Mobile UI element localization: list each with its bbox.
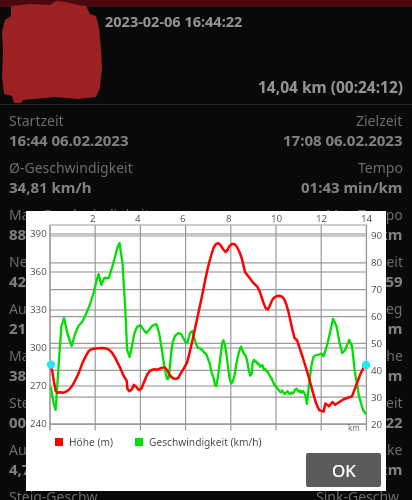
- staticText: Zielzeit: [356, 111, 403, 130]
- staticText: Aufstieg: [9, 299, 64, 318]
- staticText: 4,7 km: [9, 459, 59, 479]
- staticText: 60: [371, 310, 383, 323]
- staticText: Startzeit: [9, 111, 64, 130]
- staticText: 219 m: [9, 318, 54, 338]
- staticText: 4: [135, 212, 141, 225]
- staticText: 01:43 min/km: [301, 177, 403, 197]
- staticText: 50: [371, 337, 383, 350]
- staticText: Aufstiegsstrecke: [9, 440, 118, 459]
- staticText: Ø-Geschwindigkeit: [9, 158, 133, 177]
- staticText: 90: [371, 229, 383, 242]
- staticText: 20: [371, 418, 383, 431]
- staticText: 10: [271, 212, 283, 225]
- staticText: 330: [30, 303, 47, 316]
- staticText: Tempo: [358, 158, 403, 177]
- staticText: 14: [361, 212, 373, 225]
- staticText: 21:59: [364, 271, 403, 291]
- staticText: 240: [30, 417, 47, 430]
- staticText: 88,99 km/h: [9, 224, 92, 244]
- staticText: 40: [371, 364, 383, 377]
- staticText: OK: [332, 459, 356, 482]
- button[interactable]: OK: [306, 453, 381, 487]
- staticText: 2023-02-06 16:44:22: [105, 11, 243, 31]
- staticText: 17:08 06.02.2023: [283, 130, 403, 150]
- staticText: 00:12: [9, 412, 48, 432]
- other: Map thumbnail: [0, 0, 412, 104]
- staticText: 300: [30, 341, 47, 354]
- staticText: Max-Höhe: [9, 346, 77, 365]
- staticText: 6: [180, 212, 186, 225]
- staticText: 387 m: [9, 365, 54, 385]
- staticText: 360: [30, 265, 47, 278]
- staticText: Geschwindigkeit (km/h): [149, 435, 262, 449]
- staticText: 2: [90, 212, 96, 225]
- staticText: 70: [371, 283, 383, 296]
- staticText: 42:59: [9, 271, 48, 291]
- staticText: Höhe (m): [69, 435, 114, 449]
- staticText: Sinkzeit: [352, 393, 403, 412]
- staticText: 8: [226, 212, 232, 225]
- staticText: Steigzeit: [9, 393, 65, 412]
- staticText: 248 m: [358, 365, 403, 385]
- staticText: 30: [371, 391, 383, 404]
- staticText: 16:44 06.02.2023: [9, 130, 129, 150]
- staticText: 12: [316, 212, 328, 225]
- staticText: 390: [30, 227, 47, 240]
- staticText: Max-Geschwindigkeit: [9, 205, 150, 224]
- staticText: 00:22: [364, 412, 403, 432]
- staticText: Sink-Geschw.: [316, 487, 403, 500]
- staticText: km: [348, 422, 360, 433]
- staticText: 80: [371, 256, 383, 269]
- staticText: Abstiegsstrecke: [299, 440, 403, 459]
- staticText: Bewegungszeit: [303, 252, 403, 271]
- staticText: 00:40 min/km: [301, 224, 403, 244]
- staticText: 270: [30, 379, 47, 392]
- staticText: 5,1 km: [353, 459, 403, 479]
- staticText: Max-Tempo: [326, 205, 403, 224]
- staticText: Steig-Geschw.: [9, 487, 101, 500]
- staticText: 14,04 km (00:24:12): [258, 76, 404, 97]
- staticText: Min-Höhe: [338, 346, 403, 365]
- staticText: Netto-Zeit: [9, 252, 76, 271]
- staticText: 34,81 km/h: [9, 177, 92, 197]
- staticText: 214 m: [358, 318, 403, 338]
- staticText: Anstieg: [353, 299, 403, 318]
